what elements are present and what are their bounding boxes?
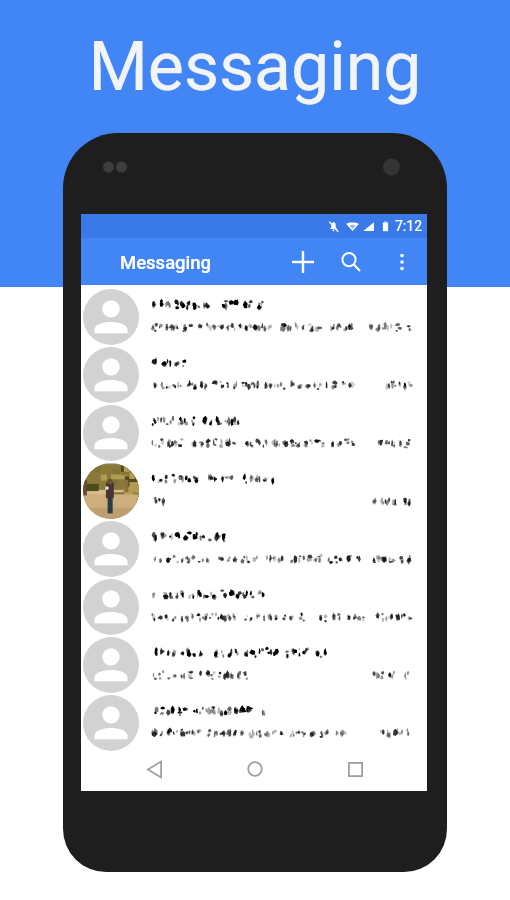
button[interactable]: Back [134, 749, 174, 789]
staticText: 7:12 [395, 218, 422, 234]
button[interactable] [81, 285, 427, 343]
button[interactable] [81, 575, 427, 633]
button[interactable] [81, 401, 427, 459]
button[interactable]: Recent apps [335, 749, 375, 789]
button[interactable] [81, 459, 427, 517]
button[interactable] [81, 517, 427, 575]
button[interactable]: New conversation [281, 240, 325, 284]
button[interactable]: Home [235, 749, 275, 789]
button[interactable] [81, 633, 427, 691]
button[interactable]: More options [382, 242, 422, 282]
staticText: Messaging [120, 252, 212, 274]
button[interactable]: Search [329, 240, 373, 284]
button[interactable] [81, 691, 427, 749]
button[interactable] [81, 343, 427, 401]
staticText: Messaging [88, 27, 422, 107]
